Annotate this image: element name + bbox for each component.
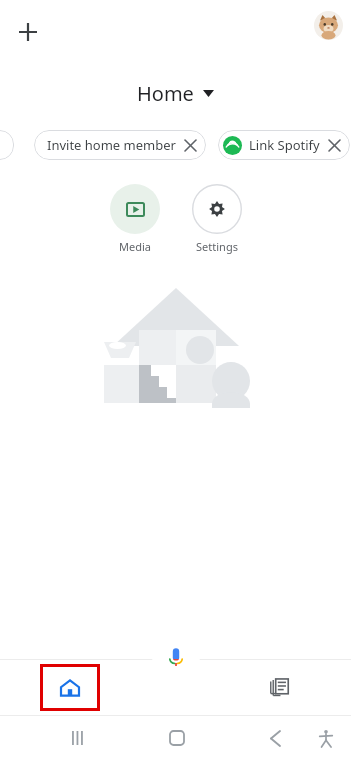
- button[interactable]: Recent apps: [62, 728, 94, 748]
- staticText: Home: [137, 80, 194, 107]
- button[interactable]: Accessibility: [312, 727, 340, 749]
- staticText: Media: [108, 239, 162, 254]
- button[interactable]: Settings: [190, 184, 244, 254]
- button[interactable]: Add: [8, 12, 48, 52]
- staticText: Invite home member: [47, 136, 176, 154]
- button[interactable]: Home: [163, 728, 191, 748]
- button[interactable]: Previous suggestion: [0, 130, 14, 160]
- button[interactable]: Invite home member: [34, 130, 206, 160]
- button[interactable]: Account: [314, 11, 343, 40]
- button[interactable]: Media: [108, 184, 162, 254]
- button[interactable]: Link Spotify: [218, 130, 350, 160]
- button[interactable]: Home: [43, 668, 97, 707]
- button[interactable]: Google Assistant: [152, 633, 200, 681]
- staticText: Settings: [190, 239, 244, 254]
- button[interactable]: Back: [261, 728, 289, 748]
- staticText: Link Spotify: [249, 136, 320, 154]
- button[interactable]: Activity feed: [252, 668, 306, 707]
- button[interactable]: Home: [129, 78, 222, 109]
